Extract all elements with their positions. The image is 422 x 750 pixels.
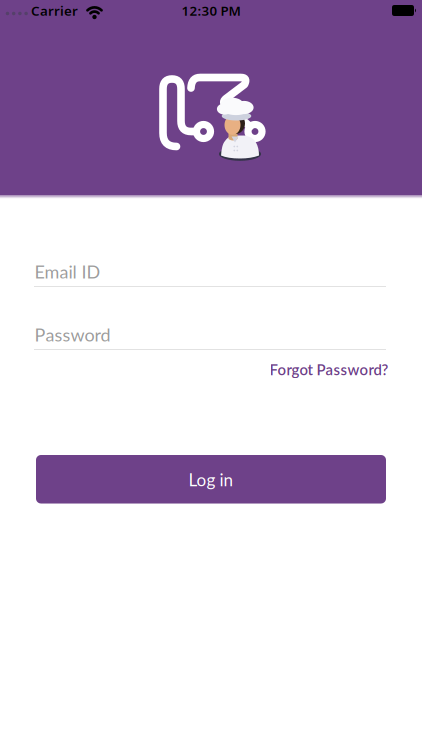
button[interactable]: Forgot Password? [269,360,388,378]
button[interactable]: Password [0,326,422,350]
button[interactable]: Email ID [0,263,422,287]
button[interactable]: Log in [36,455,386,503]
staticText: 12:30 PM [181,2,240,19]
staticText: Password [34,324,110,345]
staticText: Forgot Password? [269,360,388,378]
staticText: Log in [188,469,233,490]
staticText: Carrier [31,2,78,19]
staticText: Email ID [34,261,100,282]
